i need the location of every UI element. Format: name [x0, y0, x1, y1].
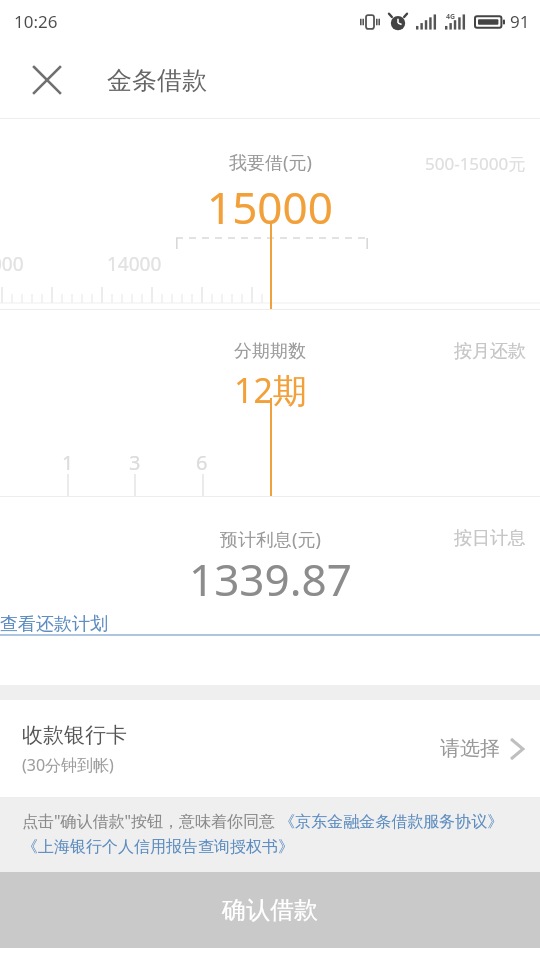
- staticText: 000: [0, 251, 24, 277]
- button[interactable]: Close: [22, 55, 72, 105]
- staticText: 查看还款计划: [0, 613, 108, 636]
- staticText: 10:26: [14, 10, 58, 33]
- staticText: 请选择: [440, 736, 500, 761]
- staticText: 91: [510, 10, 530, 33]
- button[interactable]: 确认借款: [0, 872, 540, 948]
- button[interactable]: 点击"确认借款"按钮，意味着你同意 《京东金融金条借款服务协议》 《上海银行个人…: [22, 810, 526, 856]
- staticText: 15000: [207, 177, 333, 237]
- staticText: 12期: [234, 367, 307, 413]
- staticText: 1: [62, 449, 74, 476]
- staticText: 1339.87: [189, 549, 352, 609]
- staticText: (30分钟到帐): [22, 754, 114, 776]
- staticText: 确认借款: [222, 895, 318, 925]
- staticText: 14000: [107, 251, 162, 277]
- button[interactable]: 查看还款计划: [0, 613, 540, 636]
- staticText: 收款银行卡: [22, 722, 127, 748]
- button[interactable]: 收款银行卡: [0, 700, 540, 797]
- staticText: 预计利息(元): [220, 527, 321, 552]
- staticText: 6: [196, 449, 208, 476]
- staticText: 4G: [446, 12, 456, 22]
- staticText: 分期期数: [234, 340, 306, 363]
- staticText: 金条借款: [107, 65, 207, 96]
- staticText: 3: [129, 449, 141, 476]
- staticText: 我要借(元): [229, 150, 312, 175]
- staticText: 按月还款: [454, 340, 526, 363]
- staticText: 500-15000元: [425, 152, 526, 175]
- staticText: 按日计息: [454, 527, 526, 550]
